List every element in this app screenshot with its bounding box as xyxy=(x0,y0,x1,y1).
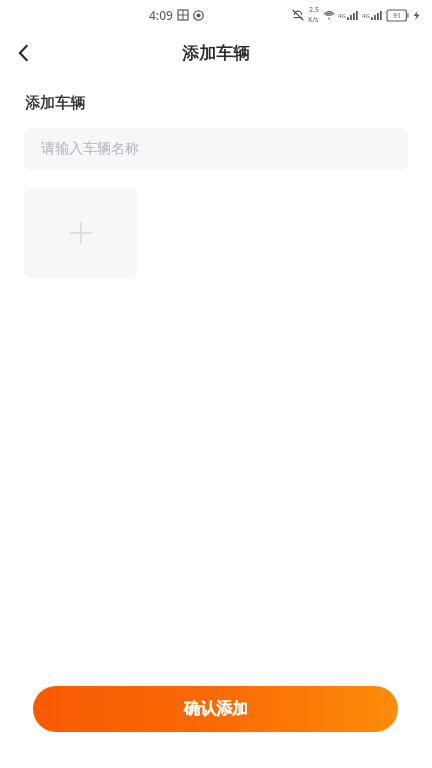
staticText: 确认添加 xyxy=(184,699,248,719)
staticText: 4G xyxy=(362,12,370,20)
staticText: 4:09 xyxy=(149,7,173,23)
staticText: 91 xyxy=(393,11,402,21)
button[interactable]: 请输入车辆名称 xyxy=(24,128,408,170)
staticText: K/s xyxy=(308,15,319,25)
button[interactable]: Back xyxy=(0,30,48,76)
staticText: 4G xyxy=(338,12,346,20)
button[interactable]: 确认添加 xyxy=(33,686,398,732)
staticText: 请输入车辆名称 xyxy=(41,140,139,158)
staticText: 添加车辆 xyxy=(182,43,250,64)
staticText: 添加车辆 xyxy=(25,94,85,113)
staticText: 2.5 xyxy=(309,5,319,15)
